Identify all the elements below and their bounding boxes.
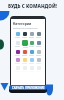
button[interactable] — [37, 41, 41, 45]
button[interactable] — [37, 50, 41, 54]
button[interactable] — [16, 58, 20, 62]
staticText: БУДЬ С КОМАНДОЙ! — [8, 3, 57, 9]
staticText: Категории — [13, 21, 32, 26]
button[interactable] — [22, 40, 28, 46]
button[interactable] — [16, 50, 20, 54]
button[interactable] — [16, 41, 20, 45]
button[interactable] — [37, 32, 41, 36]
button[interactable] — [23, 58, 27, 62]
button[interactable] — [23, 32, 27, 36]
button[interactable] — [30, 58, 34, 62]
button[interactable] — [30, 41, 34, 45]
button[interactable] — [30, 50, 34, 54]
staticText: Выберите интересное — [13, 27, 38, 30]
button[interactable] — [30, 32, 34, 36]
button[interactable] — [23, 50, 27, 54]
staticText: СКАЧАТЬ ПРИЛОЖЕНИЕ — [12, 86, 45, 90]
button[interactable]: СКАЧАТЬ ПРИЛОЖЕНИЕ — [9, 85, 47, 90]
button[interactable] — [37, 58, 41, 62]
button[interactable] — [16, 32, 20, 36]
